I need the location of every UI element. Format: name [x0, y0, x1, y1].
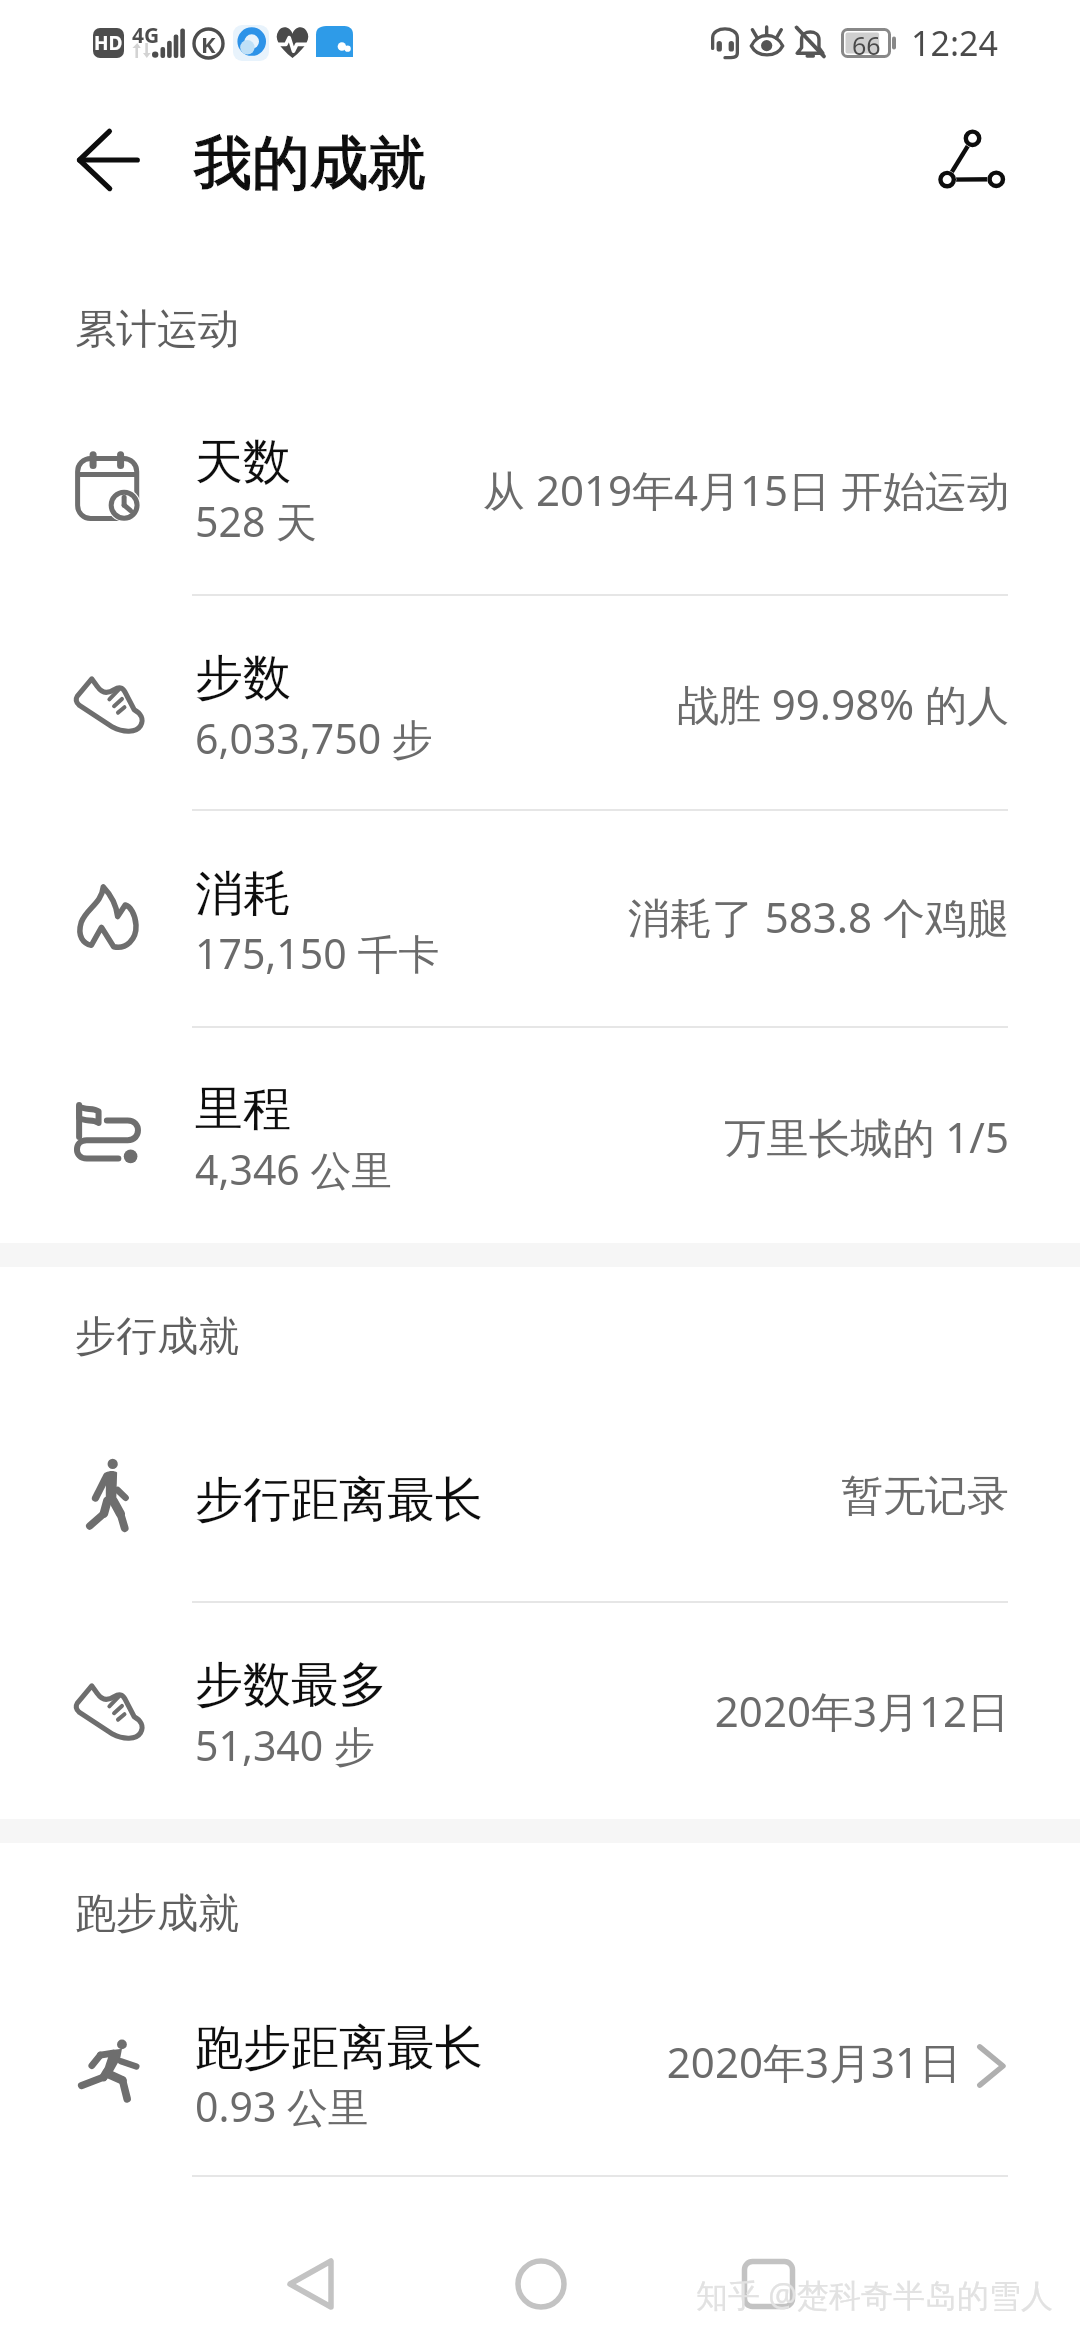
- button[interactable]: Home: [503, 2245, 579, 2323]
- staticText: 从 2019年4月15日 开始运动: [400, 461, 1009, 518]
- staticText: HD: [94, 30, 123, 56]
- staticText: 跑步成就: [75, 1888, 239, 1940]
- staticText: 步行距离最长: [195, 1470, 483, 1530]
- button[interactable]: 天数: [0, 382, 1080, 594]
- staticText: 4G: [132, 21, 160, 50]
- staticText: 万里长城的 1/5: [400, 1108, 1009, 1165]
- staticText: 步行成就: [75, 1311, 239, 1363]
- button[interactable]: Back: [272, 2245, 348, 2323]
- button[interactable]: 步行距离最长: [0, 1386, 1080, 1601]
- button[interactable]: 里程: [0, 1028, 1080, 1243]
- button[interactable]: Share: [924, 111, 1020, 207]
- staticText: 175,150 千卡: [195, 925, 440, 981]
- staticText: 2020年3月12日: [400, 1682, 1009, 1739]
- staticText: 4,346 公里: [195, 1141, 393, 1197]
- staticText: 步数: [195, 648, 291, 708]
- button[interactable]: 跑步距离最长: [0, 1960, 1080, 2175]
- staticText: 暂无记录: [400, 1470, 1009, 1523]
- staticText: 消耗了 583.8 个鸡腿: [400, 888, 1009, 945]
- staticText: 消耗: [195, 864, 291, 924]
- staticText: 知乎 @楚科奇半岛的雪人: [696, 2273, 1054, 2317]
- button[interactable]: Back: [61, 112, 157, 208]
- staticText: 战胜 99.98% 的人: [400, 675, 1009, 732]
- staticText: 528 天: [195, 493, 318, 549]
- staticText: 6,033,750 步: [195, 710, 433, 766]
- staticText: K: [201, 29, 216, 59]
- button[interactable]: Recents: [730, 2245, 806, 2323]
- staticText: 51,340 步: [195, 1717, 375, 1773]
- staticText: 0.93 公里: [195, 2078, 370, 2134]
- staticText: 步数最多: [195, 1655, 387, 1715]
- button[interactable]: 消耗: [0, 811, 1080, 1026]
- staticText: 天数: [195, 432, 291, 492]
- staticText: 12:24: [911, 20, 998, 66]
- staticText: 跑步距离最长: [195, 2018, 483, 2078]
- button[interactable]: 步数最多: [0, 1603, 1080, 1819]
- staticText: 我的成就: [194, 127, 426, 200]
- staticText: 2020年3月31日: [400, 2033, 961, 2090]
- staticText: 我的成就: [194, 127, 426, 200]
- staticText: 66: [852, 28, 881, 58]
- button[interactable]: 步数: [0, 596, 1080, 809]
- staticText: 里程: [195, 1079, 291, 1139]
- staticText: 累计运动: [75, 304, 239, 356]
